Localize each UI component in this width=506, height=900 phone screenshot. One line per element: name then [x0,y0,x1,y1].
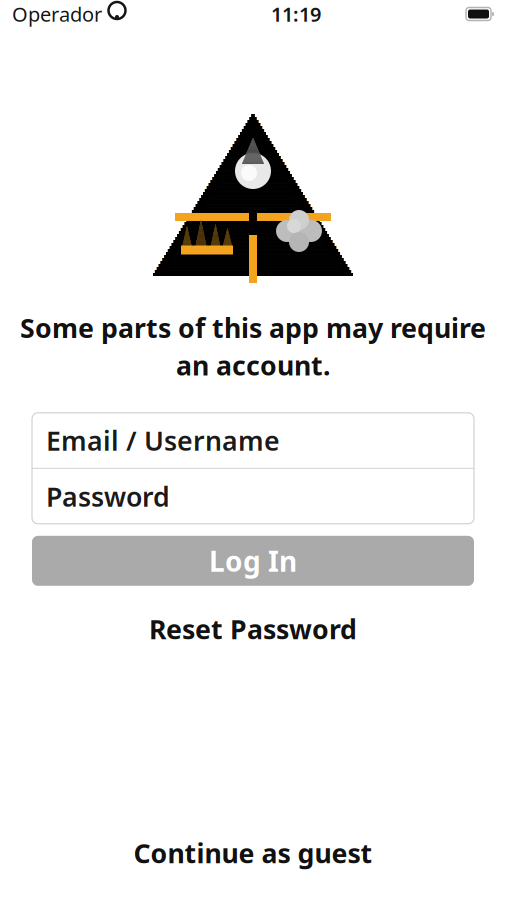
button[interactable]: Reset Password [32,612,474,646]
staticText: Log In [209,542,297,579]
staticText: Operador [12,1,102,27]
staticText: 11:19 [271,1,321,27]
staticText: Email / Username [46,423,280,458]
staticText: Reset Password [149,611,357,646]
staticText: an account. [176,347,330,383]
staticText: Some parts of this app may require [20,310,486,345]
staticText: Password [46,479,170,514]
button[interactable]: Continue as guest [32,836,474,870]
staticText: Continue as guest [133,835,372,871]
button[interactable]: Log In [32,536,474,586]
